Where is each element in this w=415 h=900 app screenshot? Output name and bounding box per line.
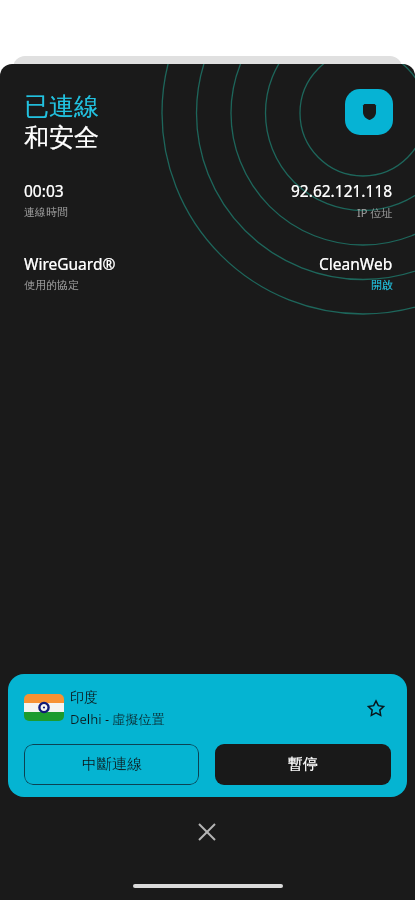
staticText: CleanWeb [319,253,393,274]
staticText: IP 位址 [357,205,393,220]
staticText: 和安全 [24,122,99,153]
button[interactable]: 中斷連線 [24,744,199,785]
staticText: 使用的協定 [24,278,79,292]
staticText: 連線時間 [24,205,68,219]
button[interactable]: Favourite [359,691,393,725]
staticText: Delhi - 虛擬位置 [70,710,165,728]
staticText: WireGuard® [24,253,116,274]
staticText: 已連線 [24,91,99,122]
staticText: 中斷連線 [82,755,142,774]
staticText: 00:03 [24,180,64,201]
staticText: 開啟 [371,278,393,292]
button[interactable]: 暫停 [215,744,391,785]
staticText: 暫停 [288,755,318,774]
staticText: 92.62.121.118 [291,180,393,201]
button[interactable]: Close [189,814,225,850]
staticText: 印度 [70,689,98,707]
button[interactable]: Protected [345,89,393,135]
